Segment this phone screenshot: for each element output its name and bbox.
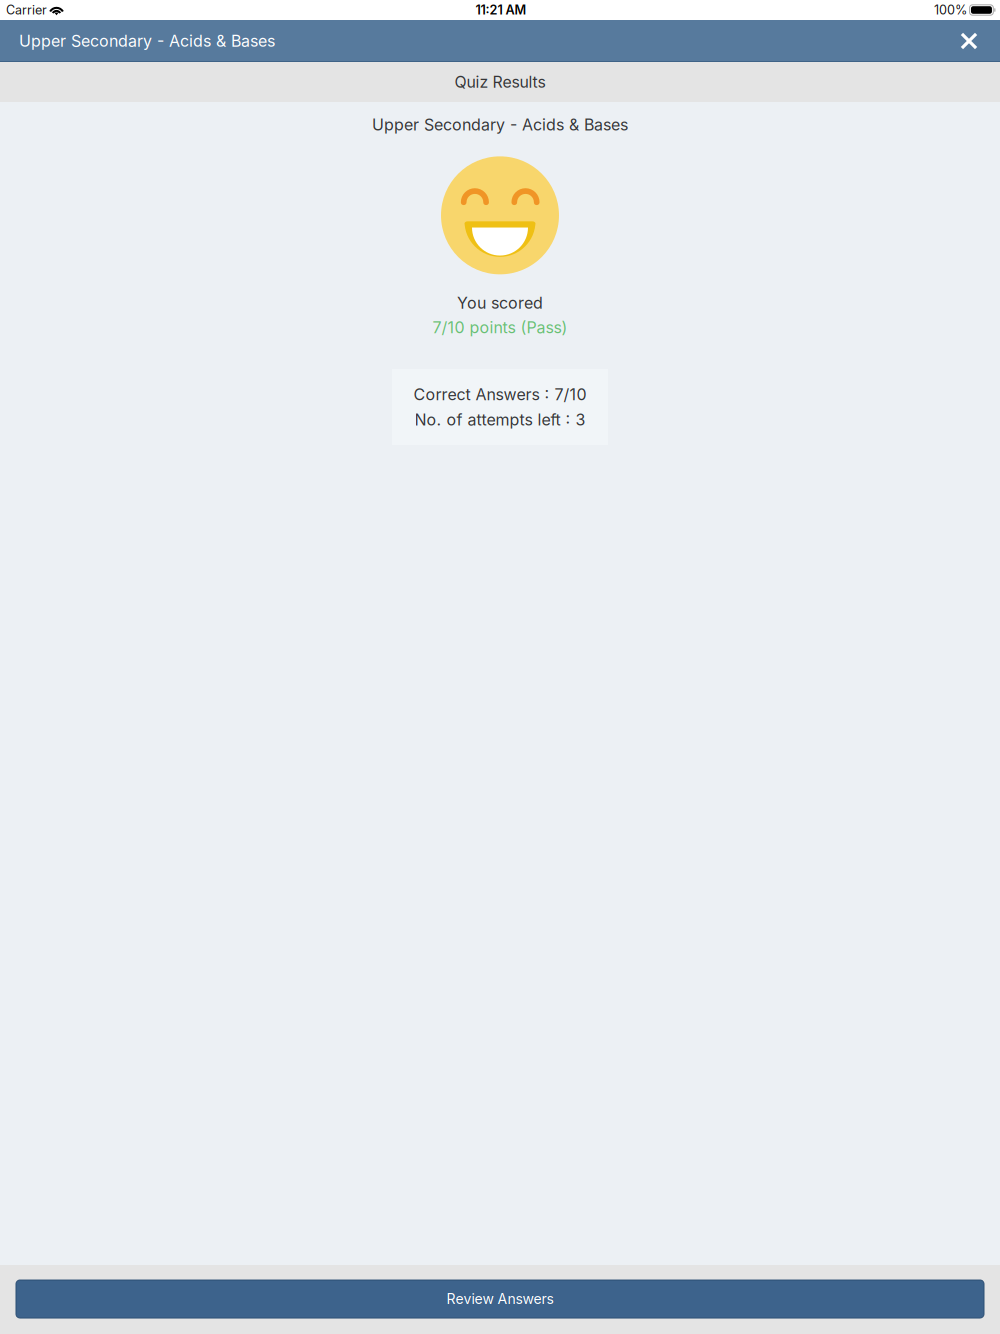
button[interactable]: Close: [947, 20, 1000, 62]
staticText: Correct Answers : 7/10: [413, 385, 586, 404]
staticText: No. of attempts left : 3: [414, 410, 585, 429]
staticText: Upper Secondary - Acids & Bases: [19, 31, 275, 51]
staticText: 7/10 points (Pass): [432, 318, 567, 337]
button[interactable]: Review Answers: [16, 1280, 984, 1318]
staticText: Carrier: [6, 2, 47, 18]
staticText: 100%: [934, 2, 967, 18]
staticText: Review Answers: [446, 1290, 553, 1307]
staticText: 11:21 AM: [475, 2, 526, 18]
staticText: Upper Secondary - Acids & Bases: [372, 115, 628, 134]
staticText: Quiz Results: [454, 72, 545, 92]
staticText: You scored: [457, 293, 543, 313]
